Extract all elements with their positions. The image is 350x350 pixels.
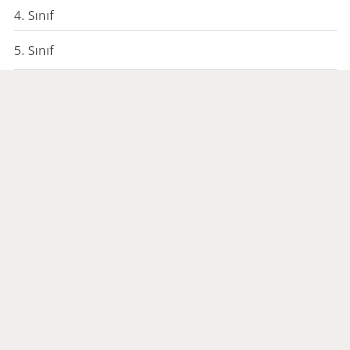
staticText: 4. Sınıf (14, 7, 54, 24)
button[interactable]: 4. Sınıf (0, 0, 350, 30)
staticText: 5. Sınıf (14, 42, 54, 59)
button[interactable]: 5. Sınıf (0, 31, 350, 69)
